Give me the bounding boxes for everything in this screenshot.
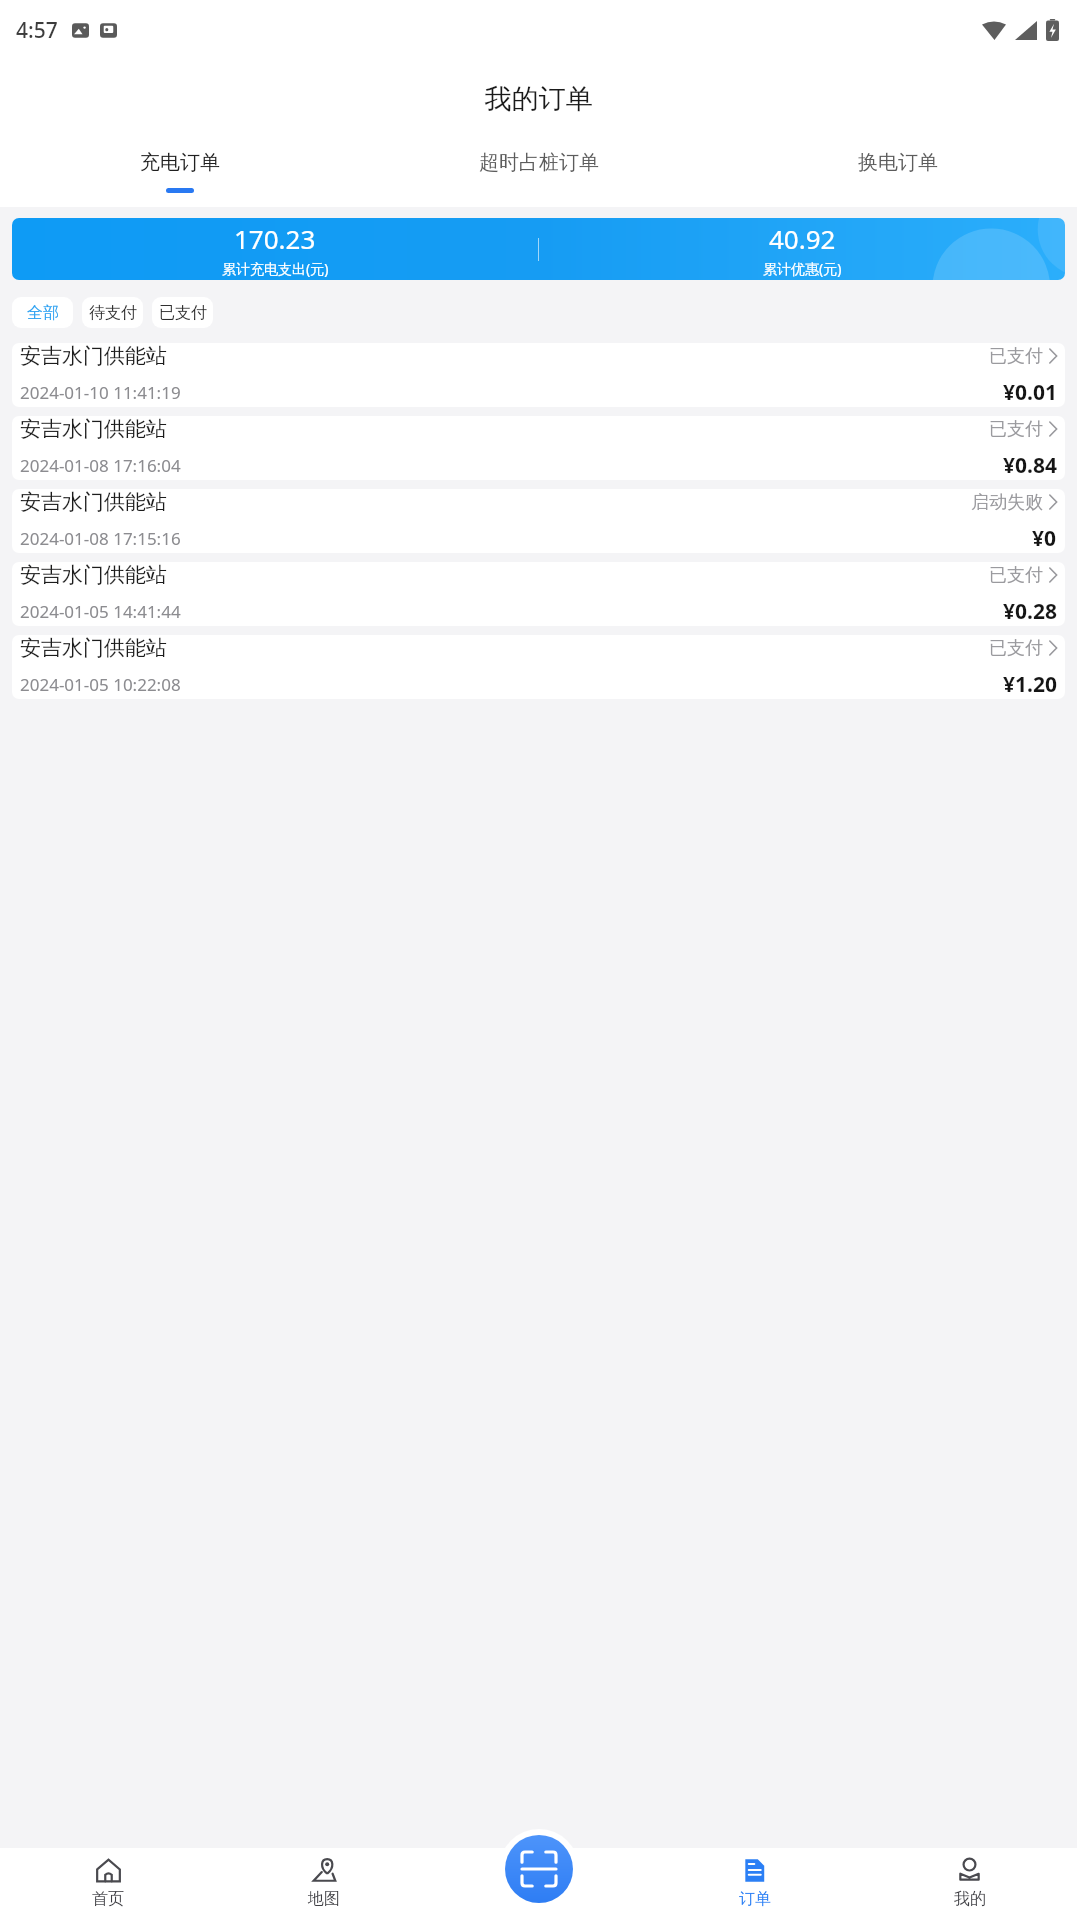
button[interactable]: 超时占桩订单 xyxy=(359,146,718,197)
staticText: 2024-01-05 10:22:08 xyxy=(20,673,1003,696)
staticText: 累计充电支出(元) xyxy=(222,259,329,278)
staticText: ¥0 xyxy=(1032,524,1057,553)
staticText: 2024-01-05 14:41:44 xyxy=(20,600,1003,623)
staticText: 已支付 xyxy=(989,345,1043,368)
staticText: 换电订单 xyxy=(858,150,938,175)
button[interactable]: 首页 xyxy=(0,1848,216,1917)
staticText: 已支付 xyxy=(159,303,207,323)
staticText: 我的订单 xyxy=(0,82,1077,116)
button[interactable]: 安吉水门供能站 xyxy=(12,343,1065,407)
staticText: 首页 xyxy=(92,1889,124,1909)
staticText: 安吉水门供能站 xyxy=(20,416,989,442)
button[interactable]: 已支付 xyxy=(152,297,213,328)
staticText: 4:57 xyxy=(16,16,58,45)
staticText: 超时占桩订单 xyxy=(479,150,599,175)
staticText: ¥0.84 xyxy=(1003,451,1057,480)
staticText: 全部 xyxy=(27,303,59,323)
button[interactable]: 全部 xyxy=(12,297,73,328)
staticText: 地图 xyxy=(308,1889,340,1909)
button[interactable]: 订单 xyxy=(647,1848,862,1917)
staticText: 订单 xyxy=(739,1889,771,1909)
button[interactable]: 待支付 xyxy=(82,297,143,328)
staticText: 充电订单 xyxy=(140,150,220,175)
staticText: 已支付 xyxy=(989,637,1043,660)
button[interactable]: 安吉水门供能站 xyxy=(12,416,1065,480)
staticText: 40.92 xyxy=(769,221,836,256)
staticText: 安吉水门供能站 xyxy=(20,635,989,661)
staticText: 启动失败 xyxy=(971,491,1043,514)
staticText: 170.23 xyxy=(234,221,316,256)
button[interactable]: 扫一扫 xyxy=(505,1835,573,1903)
button[interactable]: 我的 xyxy=(862,1848,1077,1917)
button[interactable]: 充电订单 xyxy=(0,146,359,197)
staticText: 安吉水门供能站 xyxy=(20,343,989,369)
button[interactable]: 地图 xyxy=(216,1848,432,1917)
staticText: 安吉水门供能站 xyxy=(20,562,989,588)
button[interactable]: 安吉水门供能站 xyxy=(12,562,1065,626)
staticText: ¥1.20 xyxy=(1003,670,1057,699)
button[interactable]: 安吉水门供能站 xyxy=(12,489,1065,553)
staticText: ¥0.01 xyxy=(1003,378,1057,407)
button[interactable]: 安吉水门供能站 xyxy=(12,635,1065,699)
button[interactable]: 换电订单 xyxy=(718,146,1077,197)
staticText: 待支付 xyxy=(89,303,137,323)
staticText: 2024-01-10 11:41:19 xyxy=(20,381,1003,404)
staticText: 累计优惠(元) xyxy=(763,259,842,278)
staticText: 已支付 xyxy=(989,564,1043,587)
staticText: 已支付 xyxy=(989,418,1043,441)
staticText: ¥0.28 xyxy=(1003,597,1057,626)
staticText: 2024-01-08 17:15:16 xyxy=(20,527,1032,550)
staticText: 2024-01-08 17:16:04 xyxy=(20,454,1003,477)
button[interactable]: 170.23 xyxy=(12,218,1065,280)
staticText: 我的 xyxy=(954,1889,986,1909)
staticText: 安吉水门供能站 xyxy=(20,489,971,515)
